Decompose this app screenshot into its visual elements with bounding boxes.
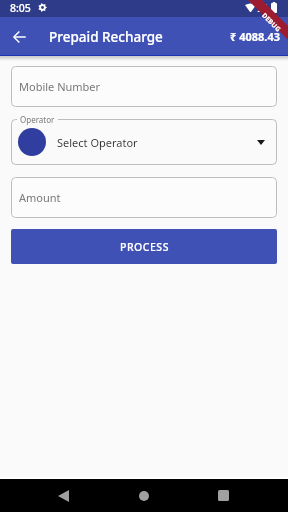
button[interactable]: PROCESS <box>11 229 277 264</box>
staticText: Mobile Number <box>19 79 101 94</box>
staticText: DEBUG <box>260 11 283 34</box>
button[interactable]: Home <box>127 479 160 512</box>
button[interactable]: Back <box>47 479 80 512</box>
staticText: Select Operator <box>57 135 138 150</box>
button[interactable]: Select Operator <box>11 119 277 165</box>
button[interactable]: Recents <box>207 479 240 512</box>
staticText: ₹ 4088.43 <box>230 29 280 44</box>
button[interactable]: ₹ 4088.43 <box>230 29 288 44</box>
staticText: Prepaid Recharge <box>49 28 163 46</box>
staticText: Operator <box>20 114 55 125</box>
button[interactable]: Mobile Number <box>11 66 277 107</box>
staticText: Amount <box>19 190 61 205</box>
button[interactable]: Amount <box>11 177 277 218</box>
staticText: 8:05 <box>10 1 31 15</box>
button[interactable]: Back <box>0 17 39 56</box>
staticText: PROCESS <box>120 240 169 254</box>
